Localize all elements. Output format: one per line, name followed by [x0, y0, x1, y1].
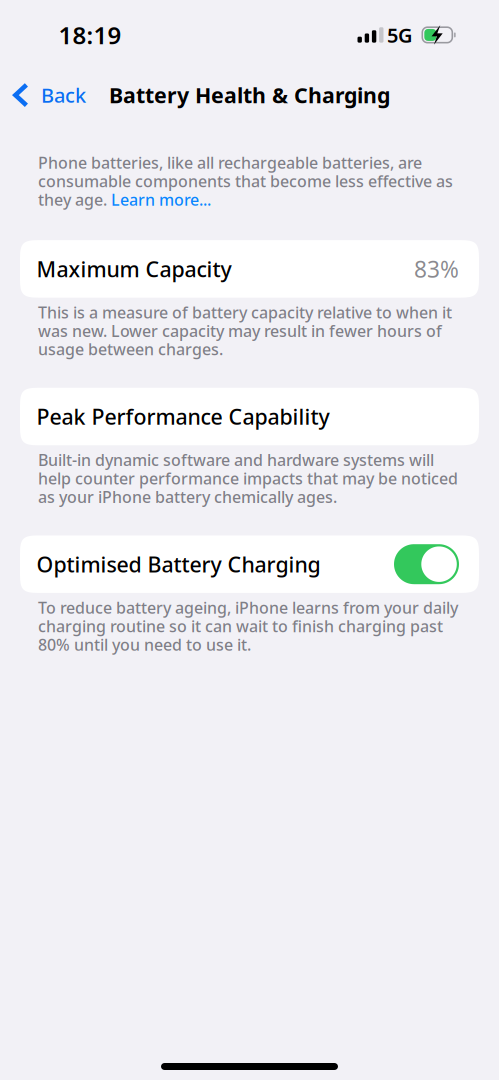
staticText: Battery Health & Charging: [109, 81, 390, 109]
button[interactable]: Maximum Capacity: [20, 240, 479, 298]
staticText: This is a measure of battery capacity re…: [38, 302, 452, 360]
staticText: 18:19: [58, 19, 121, 51]
staticText: 5G: [387, 22, 413, 48]
staticText: Built-in dynamic software and hardware s…: [38, 449, 458, 507]
staticText: Maximum Capacity: [36, 255, 231, 283]
staticText: Phone batteries, like all rechargeable b…: [38, 152, 453, 210]
staticText: Peak Performance Capability: [36, 402, 329, 431]
button[interactable]: Peak Performance Capability: [20, 388, 479, 445]
staticText: Optimised Battery Charging: [36, 550, 320, 578]
button[interactable]: Optimised Battery Charging: [394, 544, 459, 584]
staticText: 83%: [414, 254, 459, 284]
staticText: To reduce battery ageing, iPhone learns …: [38, 597, 458, 655]
button[interactable]: Back: [0, 72, 99, 118]
staticText: Back: [41, 82, 86, 108]
